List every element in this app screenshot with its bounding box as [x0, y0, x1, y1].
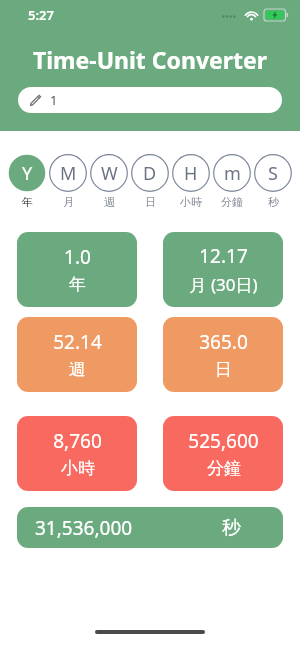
staticText: 8,760	[53, 428, 102, 454]
staticText: H	[184, 161, 198, 186]
staticText: 秒	[222, 516, 241, 540]
button[interactable]: D	[131, 154, 169, 209]
staticText: 日	[215, 359, 232, 380]
button[interactable]: S	[254, 154, 292, 209]
staticText: 小時	[180, 195, 202, 209]
staticText: 週	[104, 195, 115, 209]
staticText: 分鐘	[207, 458, 241, 479]
button[interactable]: H	[172, 154, 210, 209]
button[interactable]: m	[213, 154, 251, 209]
staticText: 52.14	[53, 329, 102, 355]
button[interactable]: 525,600	[163, 416, 283, 491]
staticText: W	[101, 161, 118, 186]
staticText: 5:27	[28, 6, 54, 24]
button[interactable]: 8,760	[17, 416, 137, 491]
staticText: 31,536,000	[35, 515, 133, 541]
staticText: 12.17	[199, 243, 248, 269]
staticText: m	[224, 161, 241, 186]
staticText: 年	[22, 195, 33, 209]
button[interactable]: 1.0	[17, 232, 137, 307]
button[interactable]: 52.14	[17, 317, 137, 392]
button[interactable]: Y	[8, 154, 46, 209]
staticText: 525,600	[188, 428, 259, 454]
staticText: 年	[69, 274, 86, 295]
staticText: 1	[50, 91, 58, 109]
button[interactable]: W	[90, 154, 128, 209]
staticText: 日	[145, 195, 156, 209]
staticText: 小時	[61, 458, 95, 479]
staticText: S	[268, 161, 278, 186]
button[interactable]: 12.17	[163, 232, 283, 307]
button[interactable]: M	[49, 154, 87, 209]
button[interactable]: 365.0	[163, 317, 283, 392]
staticText: 月 (30日)	[189, 273, 258, 296]
staticText: 週	[69, 359, 86, 380]
staticText: 月	[63, 195, 74, 209]
staticText: 365.0	[199, 329, 248, 355]
staticText: M	[60, 161, 77, 186]
staticText: 秒	[268, 195, 279, 209]
staticText: 1.0	[64, 244, 91, 270]
button[interactable]: 1	[18, 87, 282, 113]
button[interactable]: 31,536,000	[17, 507, 283, 548]
staticText: Time-Unit Converter	[0, 44, 300, 75]
other: Home indicator	[95, 630, 205, 634]
staticText: 分鐘	[221, 195, 243, 209]
staticText: D	[143, 161, 157, 186]
staticText: Y	[22, 161, 33, 186]
